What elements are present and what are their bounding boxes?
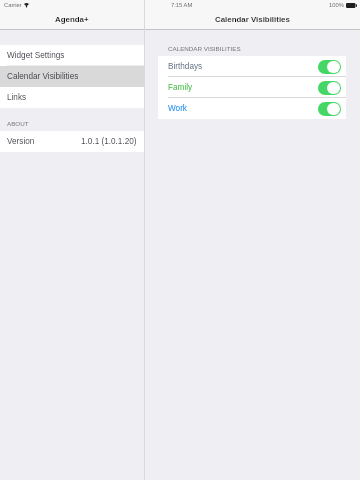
- other: Family calendar, on: [318, 81, 341, 95]
- button[interactable]: Family: [158, 77, 346, 98]
- staticText: 1.0.1 (1.0.1.20): [81, 137, 137, 146]
- staticText: Family: [168, 83, 193, 92]
- staticText: Agenda+: [55, 15, 89, 24]
- staticText: Widget Settings: [7, 51, 65, 60]
- button[interactable]: Version: [0, 131, 144, 152]
- other: Birthdays calendar, on: [318, 60, 341, 74]
- staticText: Work: [168, 104, 187, 113]
- other: Wi-Fi signal: [24, 3, 29, 8]
- other: Battery full: [346, 3, 357, 8]
- staticText: ABOUT: [7, 120, 29, 127]
- staticText: CALENDAR VISIBILITIES: [168, 45, 241, 52]
- staticText: Carrier: [4, 2, 22, 8]
- button[interactable]: Widget Settings: [0, 45, 144, 66]
- button[interactable]: Links: [0, 87, 144, 108]
- button[interactable]: Birthdays: [158, 56, 346, 77]
- staticText: Calendar Visibilities: [7, 72, 79, 81]
- staticText: Calendar Visibilities: [215, 15, 290, 24]
- button[interactable]: Calendar Visibilities: [0, 66, 144, 87]
- staticText: 7:15 AM: [171, 2, 193, 8]
- staticText: Birthdays: [168, 62, 203, 71]
- other: Work calendar, on: [318, 102, 341, 116]
- staticText: Links: [7, 93, 27, 102]
- staticText: 100%: [329, 2, 344, 8]
- staticText: Version: [7, 137, 35, 146]
- button[interactable]: Work: [158, 98, 346, 119]
